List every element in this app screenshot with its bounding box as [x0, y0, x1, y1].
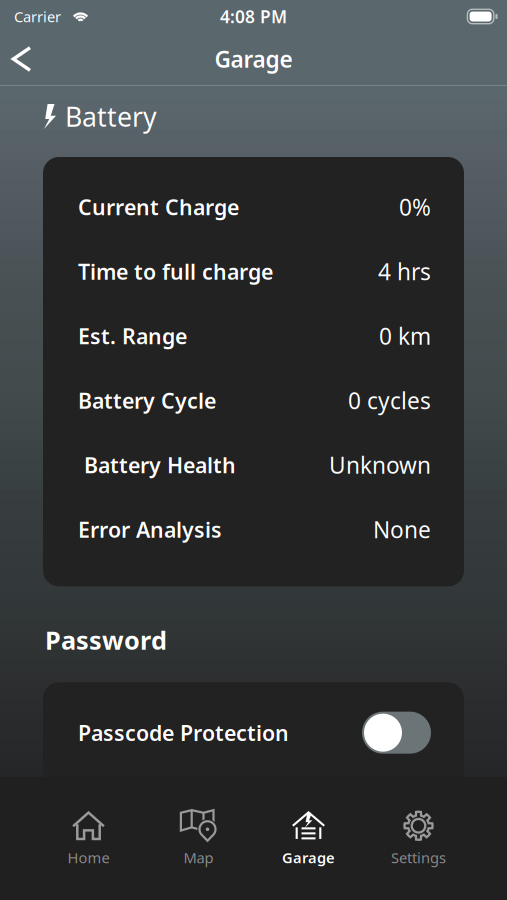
staticText: Garage [214, 44, 292, 74]
button[interactable]: Passcode Protection toggle [362, 712, 431, 754]
staticText: Map [183, 848, 213, 867]
staticText: Password [45, 623, 167, 657]
staticText: 0% [399, 192, 431, 222]
staticText: Settings [391, 848, 446, 867]
staticText: Battery [65, 99, 157, 134]
staticText: 4 hrs [378, 256, 431, 286]
staticText: Carrier [14, 7, 61, 26]
staticText: 4:08 PM [220, 5, 287, 28]
staticText: 0 cycles [348, 385, 431, 415]
staticText: Error Analysis [78, 515, 222, 544]
staticText: Time to full charge [78, 257, 273, 286]
staticText: Home [67, 848, 109, 867]
staticText: Current Charge [78, 193, 239, 221]
button[interactable]: Garage [253, 803, 363, 873]
staticText: 0 km [379, 321, 431, 351]
staticText: Battery Cycle [78, 386, 216, 415]
staticText: Unknown [329, 450, 431, 480]
staticText: Passcode Protection [78, 718, 289, 747]
staticText: None [373, 514, 431, 544]
button[interactable]: Back [0, 33, 47, 84]
button[interactable]: Home [33, 803, 143, 873]
button[interactable]: Map [143, 803, 253, 873]
staticText: Garage [282, 848, 335, 867]
staticText: Est. Range [78, 322, 187, 350]
button[interactable]: Settings [363, 803, 473, 873]
staticText: Battery Health [78, 451, 236, 479]
